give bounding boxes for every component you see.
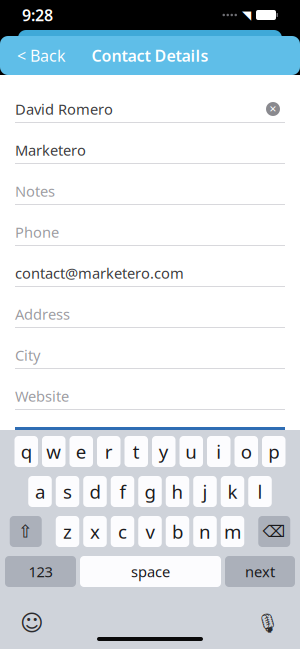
staticText: k xyxy=(227,479,237,504)
staticText: 123 xyxy=(28,562,52,581)
staticText: v xyxy=(145,519,154,544)
staticText: 🎙 xyxy=(256,612,280,634)
button[interactable]: u xyxy=(179,436,203,467)
staticText: Phone xyxy=(15,222,59,242)
button[interactable]: t xyxy=(124,436,148,467)
button[interactable]: c xyxy=(111,516,134,547)
staticText: ⌫ xyxy=(263,522,286,541)
staticText: City xyxy=(15,345,40,365)
button[interactable]: b xyxy=(166,516,189,547)
button[interactable]: z xyxy=(56,516,79,547)
button[interactable]: k xyxy=(221,476,244,507)
button[interactable]: f xyxy=(111,476,134,507)
button[interactable]: j xyxy=(193,476,217,507)
button[interactable]: w xyxy=(42,436,65,467)
button[interactable]: Delete xyxy=(258,516,290,547)
staticText: j xyxy=(202,479,207,504)
staticText: David Romero xyxy=(15,99,113,119)
staticText: contact@marketero.com xyxy=(15,263,184,283)
staticText: p xyxy=(268,439,279,464)
button[interactable]: y xyxy=(152,436,175,467)
staticText: q xyxy=(21,439,32,464)
staticText: u xyxy=(185,439,197,464)
staticText: c xyxy=(118,519,127,544)
button[interactable]: Clear text xyxy=(261,97,285,121)
staticText: Marketero xyxy=(15,140,86,160)
staticText: l xyxy=(257,479,262,504)
staticText: x xyxy=(90,519,100,544)
staticText: f xyxy=(119,479,125,504)
staticText: ✕ xyxy=(269,104,277,114)
staticText: next xyxy=(245,562,275,581)
button[interactable]: i xyxy=(207,436,230,467)
staticText: o xyxy=(241,439,252,464)
button[interactable]: g xyxy=(138,476,162,507)
button[interactable]: p xyxy=(262,436,285,467)
button[interactable]: s xyxy=(56,476,79,507)
button[interactable]: Dictation xyxy=(254,609,282,637)
staticText: Address xyxy=(15,304,70,324)
staticText: Notes xyxy=(15,181,55,201)
button[interactable]: l xyxy=(248,476,272,507)
staticText: w xyxy=(46,439,61,464)
staticText: e xyxy=(76,439,87,464)
button[interactable]: v xyxy=(138,516,162,547)
staticText: ⇧ xyxy=(18,522,33,541)
button[interactable]: Next xyxy=(225,556,295,587)
button[interactable]: h xyxy=(166,476,189,507)
button[interactable]: a xyxy=(28,476,52,507)
button[interactable]: r xyxy=(97,436,120,467)
staticText: s xyxy=(63,479,72,504)
staticText: t xyxy=(133,439,140,464)
button[interactable]: d xyxy=(83,476,107,507)
staticText: r xyxy=(105,439,113,464)
button[interactable]: Emoji keyboard xyxy=(18,609,46,637)
staticText: ◥ xyxy=(242,8,251,22)
staticText: 9:28 xyxy=(22,4,53,26)
button[interactable]: x xyxy=(83,516,107,547)
staticText: space xyxy=(131,562,170,581)
button[interactable]: < Back xyxy=(11,39,72,72)
staticText: h xyxy=(171,479,183,504)
staticText: y xyxy=(159,439,169,464)
button[interactable]: Numbers xyxy=(5,556,76,587)
staticText: Contact Details xyxy=(91,45,208,66)
staticText: i xyxy=(216,439,221,464)
button[interactable]: n xyxy=(193,516,217,547)
button[interactable]: q xyxy=(14,436,38,467)
button[interactable]: e xyxy=(69,436,93,467)
staticText: z xyxy=(63,519,72,544)
staticText: m xyxy=(224,519,241,544)
staticText: < Back xyxy=(17,45,66,66)
staticText: a xyxy=(35,479,45,504)
button[interactable]: space xyxy=(80,556,221,587)
button[interactable]: m xyxy=(221,516,244,547)
staticText: g xyxy=(144,479,155,504)
button[interactable]: o xyxy=(234,436,258,467)
staticText: ☺ xyxy=(20,610,44,636)
staticText: Website xyxy=(15,386,69,406)
staticText: b xyxy=(172,519,183,544)
staticText: n xyxy=(199,519,211,544)
button[interactable]: Shift xyxy=(10,516,42,547)
staticText: d xyxy=(89,479,100,504)
